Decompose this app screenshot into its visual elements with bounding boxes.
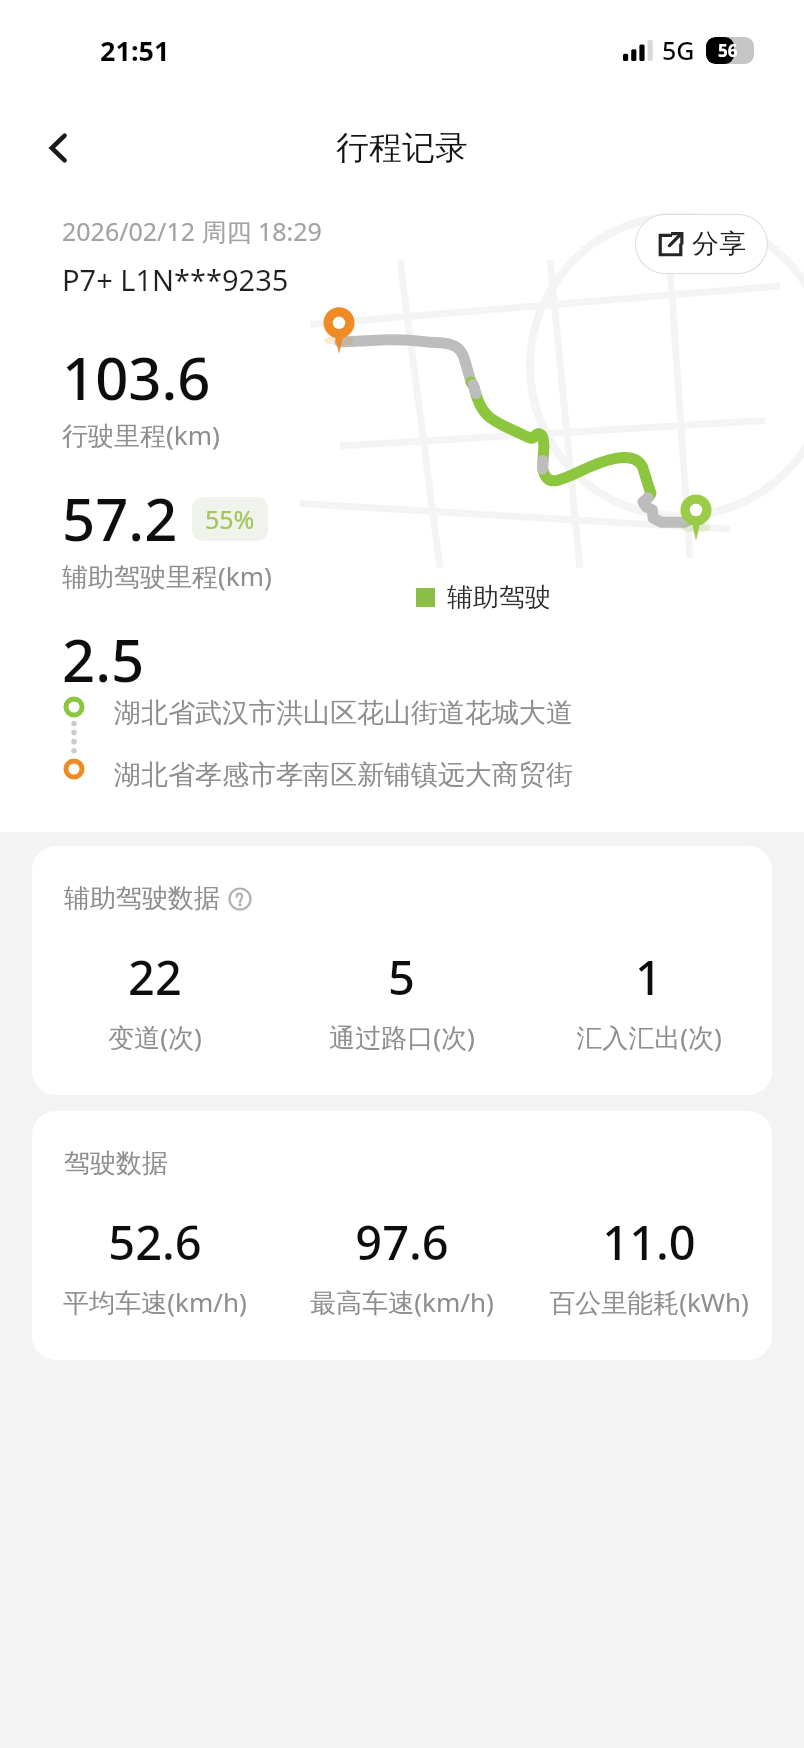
staticText: P7+ L1N***9235 [62, 260, 289, 299]
staticText: 最高车速(km/h) [310, 1284, 494, 1320]
staticText: 5G [662, 33, 695, 67]
staticText: 辅助驾驶 [447, 581, 551, 614]
staticText: 21:51 [100, 32, 170, 69]
button[interactable]: 驾驶数据 [32, 1111, 772, 1360]
staticText: 湖北省孝感市孝南区新铺镇远大商贸街 [114, 758, 573, 792]
staticText: 52.6 [108, 1210, 202, 1274]
staticText: 2026/02/12 周四 18:29 [62, 214, 322, 248]
staticText: 变道(次) [108, 1019, 202, 1055]
staticText: 1 [635, 945, 662, 1009]
staticText: 22 [128, 945, 182, 1009]
staticText: 55% [205, 502, 255, 536]
staticText: 56 [718, 39, 738, 62]
staticText: 行驶里程(km) [62, 417, 220, 453]
staticText: 平均车速(km/h) [63, 1284, 247, 1320]
button[interactable]: 辅助驾驶数据 [32, 846, 772, 1095]
staticText: 汇入汇出(次) [576, 1019, 722, 1055]
staticText: 驾驶数据 [64, 1147, 168, 1180]
staticText: 辅助驾驶数据 [64, 882, 220, 915]
staticText: 57.2 [62, 479, 178, 558]
staticText: 湖北省武汉市洪山区花山街道花城大道 [114, 696, 573, 730]
button[interactable]: Back [28, 117, 90, 179]
staticText: 分享 [692, 227, 746, 261]
staticText: 行程记录 [336, 127, 468, 169]
staticText: 5 [388, 945, 415, 1009]
staticText: 2.5 [62, 620, 145, 696]
staticText: 103.6 [62, 338, 211, 417]
staticText: 百公里能耗(kWh) [549, 1284, 749, 1320]
staticText: 辅助驾驶里程(km) [62, 558, 272, 594]
staticText: 11.0 [602, 1210, 696, 1274]
staticText: 通过路口(次) [329, 1019, 475, 1055]
staticText: 97.6 [355, 1210, 449, 1274]
button[interactable]: 分享 [635, 214, 768, 274]
